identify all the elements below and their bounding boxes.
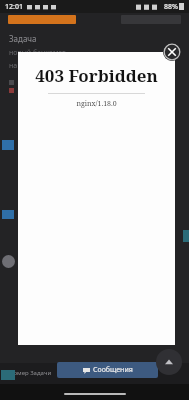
- staticText: 12:01: [5, 2, 23, 12]
- staticText: Задача: [9, 33, 37, 44]
- button[interactable]: [8, 15, 76, 24]
- staticText: 403 Forbidden: [18, 64, 175, 87]
- button[interactable]: Сообщения: [57, 362, 158, 378]
- button[interactable]: Close: [163, 43, 181, 61]
- staticText: Номер Задачи: [9, 369, 52, 377]
- staticText: 88%: [164, 2, 178, 12]
- button[interactable]: Scroll to top: [156, 349, 182, 375]
- staticText: новый банкомат: [9, 48, 66, 58]
- staticText: на: [9, 61, 18, 71]
- staticText: 928: [80, 369, 91, 377]
- staticText: nginx/1.18.0: [18, 99, 175, 109]
- staticText: Сообщения: [93, 365, 133, 375]
